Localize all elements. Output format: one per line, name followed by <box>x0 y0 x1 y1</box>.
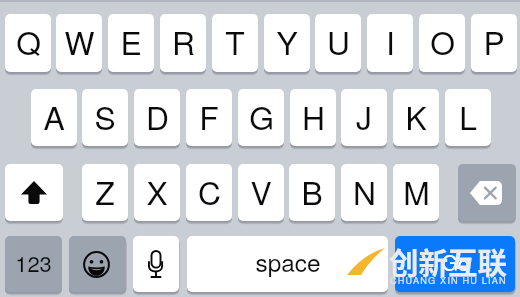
staticText: U <box>327 18 350 64</box>
button[interactable]: Y <box>264 14 310 72</box>
staticText: D <box>146 93 169 139</box>
button[interactable]: W <box>56 14 102 72</box>
button[interactable]: A <box>31 89 77 146</box>
button[interactable]: N <box>341 164 387 221</box>
button[interactable]: C <box>186 164 232 221</box>
button[interactable]: H <box>290 89 336 146</box>
button[interactable]: U <box>315 14 361 72</box>
button[interactable]: Z <box>82 164 128 221</box>
button[interactable]: I <box>367 14 413 72</box>
button[interactable]: Go <box>395 236 515 292</box>
staticText: H <box>302 93 325 139</box>
button[interactable]: B <box>289 164 335 221</box>
staticText: F <box>199 93 219 139</box>
staticText: R <box>172 18 195 64</box>
button[interactable]: T <box>212 14 258 72</box>
button[interactable]: J <box>341 89 387 146</box>
staticText: O <box>430 18 455 64</box>
button[interactable]: G <box>238 89 284 146</box>
staticText: 123 <box>15 247 52 279</box>
button[interactable]: P <box>471 14 517 72</box>
staticText: X <box>146 168 168 214</box>
button[interactable]: E <box>108 14 154 72</box>
staticText: N <box>353 168 376 214</box>
button[interactable]: S <box>82 89 128 146</box>
button[interactable]: V <box>238 164 284 221</box>
staticText: Z <box>95 168 115 214</box>
button[interactable]: F <box>186 89 232 146</box>
button[interactable]: Voice input <box>133 236 179 292</box>
staticText: space <box>255 244 321 279</box>
button[interactable]: D <box>134 89 180 146</box>
staticText: CHUANG XIN HU LIAN <box>386 273 511 286</box>
staticText: B <box>301 168 323 214</box>
button[interactable]: O <box>419 14 465 72</box>
button[interactable]: K <box>393 89 439 146</box>
button[interactable]: R <box>160 14 206 72</box>
staticText: C <box>198 168 221 214</box>
staticText: A <box>43 93 65 139</box>
staticText: Go <box>441 247 470 277</box>
staticText: K <box>405 93 427 139</box>
staticText: Q <box>16 18 41 64</box>
staticText: E <box>120 18 142 64</box>
button[interactable]: Shift <box>5 164 63 221</box>
button[interactable]: space <box>187 236 388 292</box>
staticText: V <box>250 168 272 214</box>
staticText: P <box>483 18 505 64</box>
button[interactable]: L <box>445 89 491 146</box>
staticText: I <box>386 18 395 64</box>
button[interactable]: M <box>393 164 439 221</box>
staticText: W <box>64 18 95 64</box>
staticText: 创新互联 <box>389 240 508 283</box>
staticText: Y <box>276 18 298 64</box>
staticText: M <box>403 168 430 214</box>
button[interactable]: Q <box>5 14 51 72</box>
button[interactable]: Emoji <box>69 236 126 292</box>
button[interactable]: X <box>134 164 180 221</box>
staticText: L <box>459 93 477 139</box>
staticText: S <box>94 93 116 139</box>
button[interactable]: 123 <box>5 236 62 292</box>
button[interactable]: Backspace <box>458 164 516 221</box>
staticText: J <box>356 93 372 139</box>
staticText: T <box>225 18 245 64</box>
staticText: G <box>249 93 274 139</box>
